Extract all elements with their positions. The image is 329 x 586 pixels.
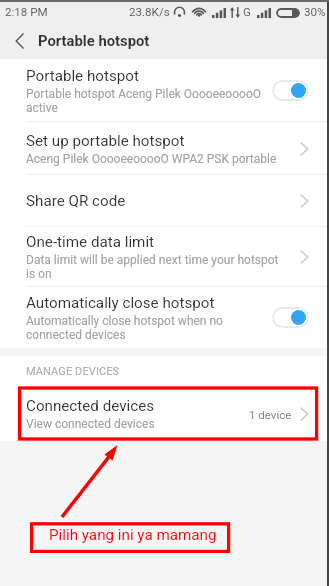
staticText: One-time data limit [26, 233, 155, 251]
staticText: Aceng Pilek OoooeeooooO WPA2 PSK portabl… [26, 152, 277, 166]
button[interactable]: Portable hotspot [0, 59, 329, 122]
staticText: Data limit will be applied next time you… [26, 253, 282, 281]
button[interactable]: Connected devices [0, 387, 329, 441]
button[interactable]: Set up portable hotspot [0, 122, 329, 175]
staticText: Share QR code [26, 192, 126, 210]
staticText: MANAGE DEVICES [26, 365, 120, 378]
staticText: Connected devices [26, 397, 155, 415]
button[interactable]: Back [0, 22, 38, 59]
staticText: 30% [304, 5, 326, 19]
staticText: Portable hotspot [38, 32, 150, 49]
staticText: View connected devices [26, 417, 155, 431]
button[interactable]: Share QR code [0, 175, 329, 227]
staticText: 1 device [249, 408, 292, 421]
staticText: Portable hotspot [26, 67, 139, 85]
button[interactable]: Automatically close hotspot [0, 287, 329, 348]
button[interactable]: One-time data limit [0, 227, 329, 287]
staticText: Portable hotspot Aceng Pilek OoooeeooooO… [26, 87, 264, 115]
staticText: Automatically close hotspot when no conn… [26, 314, 246, 342]
staticText: Set up portable hotspot [26, 132, 185, 150]
staticText: 23.8K/s [129, 5, 170, 19]
staticText: G [243, 5, 251, 19]
staticText: 2:18 PM [5, 5, 48, 19]
staticText: Pilih yang ini ya mamang [49, 526, 217, 544]
staticText: Automatically close hotspot [26, 294, 215, 312]
